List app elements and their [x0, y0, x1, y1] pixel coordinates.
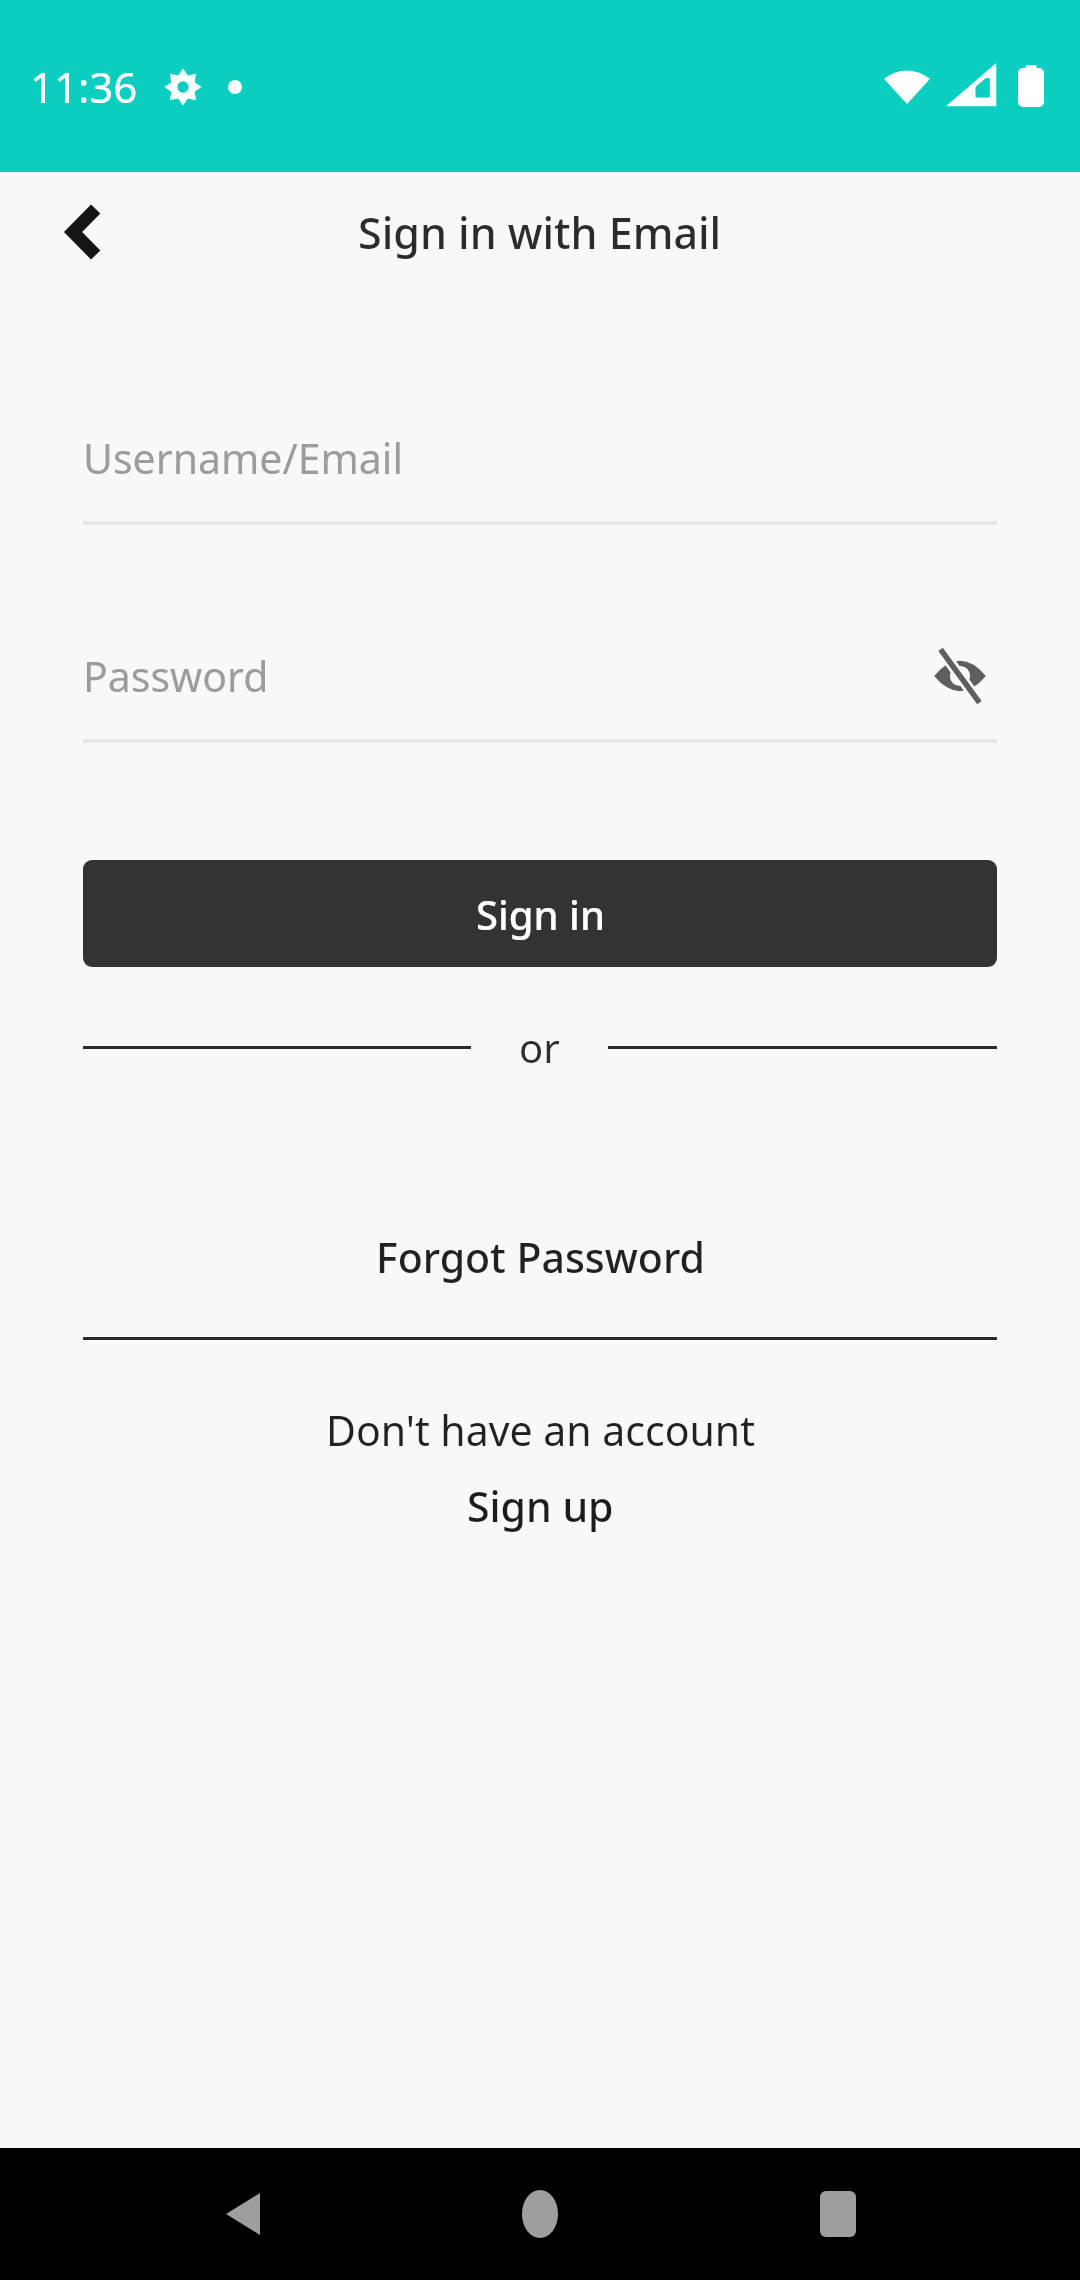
staticText: Username/Email	[83, 430, 404, 486]
button[interactable]: Password	[83, 635, 997, 743]
button[interactable]: Sign in	[83, 860, 997, 967]
staticText: Don't have an account	[326, 1402, 755, 1458]
button[interactable]: Show password	[923, 639, 997, 713]
staticText: Sign in	[476, 887, 605, 941]
button[interactable]: Home	[485, 2159, 595, 2269]
staticText: Forgot Password	[376, 1229, 705, 1285]
button[interactable]: Don't have an account	[0, 1402, 1080, 1534]
staticText: Password	[83, 648, 269, 704]
staticText: Sign up	[467, 1478, 614, 1534]
button[interactable]: Recent apps	[783, 2159, 893, 2269]
staticText: Sign in with Email	[358, 203, 722, 262]
staticText: 11:36	[30, 58, 138, 115]
button[interactable]: Back	[188, 2159, 298, 2269]
button[interactable]: Back	[40, 188, 128, 276]
button[interactable]: Username/Email	[83, 417, 997, 525]
staticText: or	[519, 1020, 560, 1074]
button[interactable]: Forgot Password	[0, 1227, 1080, 1287]
